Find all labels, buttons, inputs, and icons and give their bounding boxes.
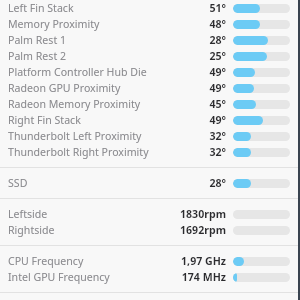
button[interactable]: Thunderbolt Right Proximity [0, 144, 300, 160]
button[interactable]: Radeon GPU Proximity [0, 80, 300, 96]
staticText: Left Fin Stack [8, 1, 74, 15]
button[interactable]: Radeon Memory Proximity [0, 96, 300, 112]
staticText: Radeon Memory Proximity [8, 97, 141, 111]
staticText: 48° [209, 17, 226, 31]
staticText: Palm Rest 2 [8, 49, 67, 63]
staticText: 25° [209, 49, 226, 63]
button[interactable]: Intel GPU Frequency [0, 269, 300, 285]
staticText: 45° [209, 97, 226, 111]
button[interactable]: Palm Rest 1 [0, 32, 300, 48]
staticText: 1,97 GHz [181, 254, 226, 268]
staticText: 49° [209, 81, 226, 95]
button[interactable]: Left Fin Stack [0, 0, 300, 16]
staticText: 28° [209, 176, 226, 190]
staticText: 1692rpm [180, 223, 226, 237]
button[interactable]: Memory Proximity [0, 16, 300, 32]
staticText: 28° [209, 33, 226, 47]
staticText: CPU Frequency [8, 254, 84, 268]
button[interactable]: Thunderbolt Left Proximity [0, 128, 300, 144]
staticText: 32° [209, 145, 226, 159]
staticText: 49° [209, 65, 226, 79]
staticText: Thunderbolt Left Proximity [8, 129, 142, 143]
staticText: Thunderbolt Right Proximity [8, 145, 149, 159]
staticText: 49° [209, 113, 226, 127]
staticText: Intel GPU Frequency [8, 270, 110, 284]
staticText: SSD [8, 176, 28, 190]
staticText: Leftside [8, 207, 48, 221]
staticText: Rightside [8, 223, 55, 237]
button[interactable]: CPU Frequency [0, 253, 300, 269]
staticText: Platform Controller Hub Die [8, 65, 147, 79]
button[interactable]: Platform Controller Hub Die [0, 64, 300, 80]
button[interactable]: Rightside [0, 222, 300, 238]
button[interactable]: SSD [0, 175, 300, 191]
staticText: Palm Rest 1 [8, 33, 67, 47]
staticText: Memory Proximity [8, 17, 100, 31]
staticText: 174 MHz [181, 270, 226, 284]
staticText: 32° [209, 129, 226, 143]
button[interactable]: Leftside [0, 206, 300, 222]
staticText: Radeon GPU Proximity [8, 81, 121, 95]
button[interactable]: Palm Rest 2 [0, 48, 300, 64]
staticText: 1830rpm [180, 207, 226, 221]
staticText: Right Fin Stack [8, 113, 81, 127]
staticText: 51° [209, 1, 226, 15]
button[interactable]: Right Fin Stack [0, 112, 300, 128]
